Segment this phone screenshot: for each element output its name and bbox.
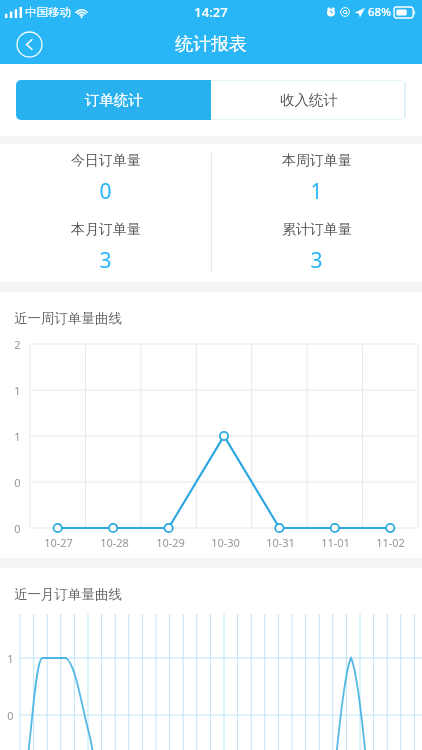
staticText: 2 xyxy=(14,337,21,352)
button[interactable]: Back xyxy=(14,29,44,59)
button[interactable]: 订单统计 xyxy=(16,80,211,120)
staticText: 10-29 xyxy=(156,535,185,550)
staticText: 近一月订单量曲线 xyxy=(14,586,122,603)
staticText: 10-27 xyxy=(44,535,73,550)
button[interactable]: 本月订单量 xyxy=(0,213,211,282)
staticText: 11-01 xyxy=(321,535,350,550)
staticText: 3 xyxy=(99,246,112,275)
staticText: 1 xyxy=(310,177,323,206)
staticText: 中国移动 xyxy=(25,5,71,19)
staticText: 10-31 xyxy=(266,535,295,550)
staticText: 3 xyxy=(310,246,323,275)
button[interactable]: 今日订单量 xyxy=(0,144,211,213)
staticText: 0 xyxy=(14,475,21,490)
button[interactable]: 收入统计 xyxy=(211,80,406,120)
staticText: 1 xyxy=(14,429,21,444)
staticText: 收入统计 xyxy=(280,91,338,109)
staticText: 订单统计 xyxy=(85,91,143,109)
staticText: 本月订单量 xyxy=(71,221,141,239)
staticText: 14:27 xyxy=(194,3,228,21)
staticText: 10-30 xyxy=(211,535,240,550)
staticText: 0 xyxy=(7,708,14,723)
button[interactable]: 本周订单量 xyxy=(211,144,422,213)
staticText: 10-28 xyxy=(100,535,129,550)
staticText: 1 xyxy=(7,651,14,666)
staticText: 统计报表 xyxy=(175,33,247,56)
staticText: 68% xyxy=(368,4,391,20)
staticText: 本周订单量 xyxy=(282,152,352,170)
staticText: 0 xyxy=(14,521,21,536)
staticText: 近一周订单量曲线 xyxy=(14,310,122,327)
button[interactable]: 累计订单量 xyxy=(211,213,422,282)
staticText: 11-02 xyxy=(376,535,405,550)
staticText: 0 xyxy=(99,177,112,206)
staticText: 累计订单量 xyxy=(282,221,352,239)
staticText: 1 xyxy=(14,383,21,398)
staticText: 今日订单量 xyxy=(71,152,141,170)
